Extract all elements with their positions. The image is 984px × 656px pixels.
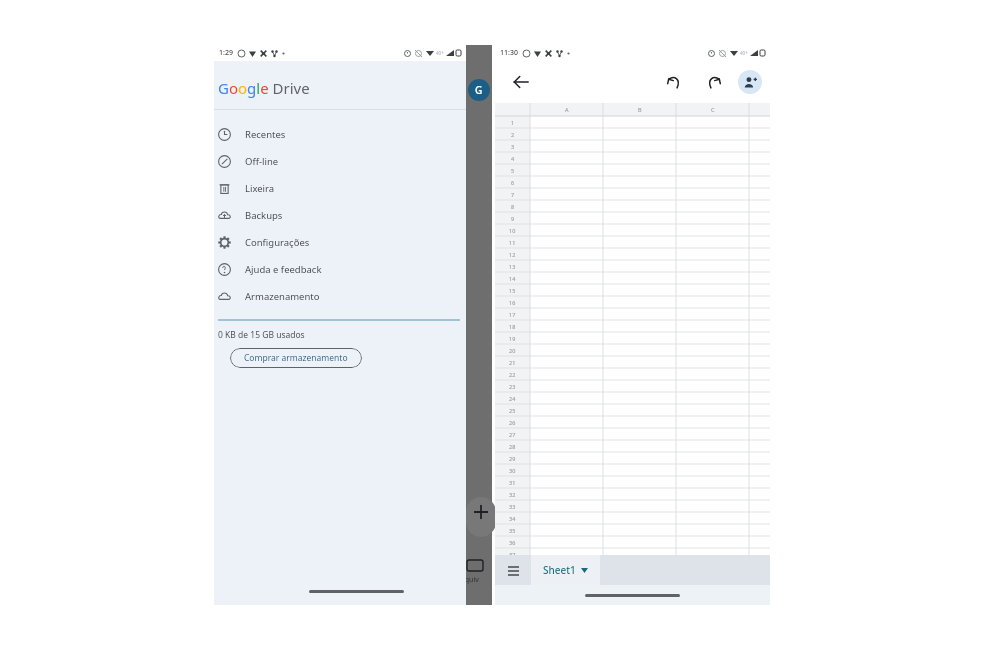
staticText: 19 [509,335,516,342]
staticText: 40+ [436,50,444,56]
button[interactable]: Recentes [214,121,466,148]
button[interactable]: Ajuda e feedback [214,256,466,283]
staticText: 31 [509,479,516,486]
staticText: 29 [509,455,516,462]
button[interactable]: Backups [214,202,466,229]
staticText: 10 [509,227,516,234]
staticText: 3 [511,143,515,150]
staticText: 16 [509,299,516,306]
staticText: 5 [511,167,515,174]
button[interactable]: Sheet1 [531,555,600,585]
staticText: 35 [509,527,516,534]
staticText: Lixeira [245,182,275,195]
staticText: 17 [509,311,516,318]
staticText: 24 [509,395,516,402]
staticText: rquiv [462,575,479,585]
staticText: 37 [509,551,516,558]
button[interactable]: Create [466,497,496,537]
staticText: 21 [509,359,516,366]
staticText: A [565,106,569,113]
staticText: 15 [509,287,516,294]
button[interactable]: Comprar armazenamento [230,348,362,368]
staticText: 27 [509,431,516,438]
button[interactable]: Lixeira [214,175,466,202]
staticText: Google Drive [218,78,310,98]
staticText: 7 [511,191,515,198]
staticText: 32 [509,491,516,498]
staticText: 33 [509,503,516,510]
staticText: 12 [509,251,516,258]
staticText: 6 [511,179,515,186]
staticText: 26 [509,419,516,426]
button[interactable]: Redo [702,70,726,94]
staticText: 1:29 [219,48,233,58]
staticText: 11:30 [500,48,518,58]
staticText: C [711,106,715,113]
staticText: 2 [511,131,515,138]
staticText: 8 [511,203,515,210]
staticText: 13 [509,263,516,270]
staticText: Sheet1 [543,563,576,577]
staticText: 9 [511,215,515,222]
staticText: 23 [509,383,516,390]
staticText: 22 [509,371,516,378]
button[interactable]: Undo [662,70,686,94]
staticText: Off-line [245,155,279,168]
staticText: 36 [509,539,516,546]
staticText: Configurações [245,236,310,249]
staticText: 1 [511,119,515,126]
staticText: 4 [511,155,515,162]
staticText: 0 KB de 15 GB usados [218,329,305,341]
staticText: 14 [509,275,516,282]
staticText: 11 [509,239,516,246]
staticText: Comprar armazenamento [244,352,348,364]
staticText: 40+ [740,50,748,56]
button[interactable]: Share [738,70,762,94]
staticText: 18 [509,323,516,330]
staticText: 34 [509,515,516,522]
button[interactable]: All sheets [495,555,531,585]
staticText: 20 [509,347,516,354]
staticText: Recentes [245,128,286,141]
staticText: 30 [509,467,516,474]
button[interactable]: Configurações [214,229,466,256]
button[interactable]: Back [509,70,533,94]
staticText: Backups [245,209,283,222]
staticText: B [638,106,642,113]
staticText: G [475,83,483,97]
button[interactable]: Armazenamento [214,283,466,310]
staticText: s [463,129,467,139]
staticText: 28 [509,443,516,450]
button[interactable]: Off-line [214,148,466,175]
staticText: 25 [509,407,516,414]
staticText: Ajuda e feedback [245,263,322,276]
staticText: Armazenamento [245,290,320,303]
